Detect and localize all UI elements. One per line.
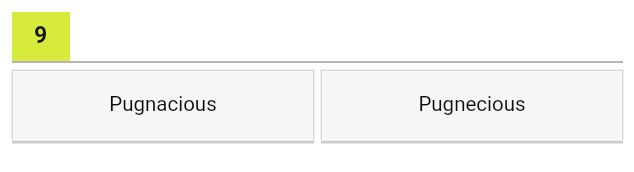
- button[interactable]: Pugnecious: [320, 69, 624, 144]
- button[interactable]: Pugnacious: [11, 69, 315, 144]
- staticText: 9: [34, 22, 48, 49]
- button[interactable]: 9: [12, 12, 70, 61]
- staticText: Pugnacious: [109, 92, 217, 116]
- staticText: Pugnecious: [418, 92, 526, 116]
